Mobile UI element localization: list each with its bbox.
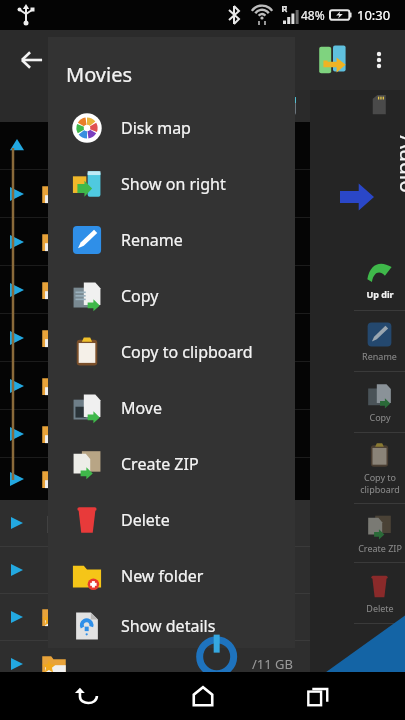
button[interactable]: Copy to other panel — [312, 39, 354, 81]
staticText: Disk map — [121, 117, 191, 139]
staticText: Rename — [121, 229, 183, 251]
button[interactable]: Back — [10, 38, 54, 82]
button[interactable]: /58 GB — [0, 594, 310, 640]
button[interactable]: /58 GB — [0, 500, 310, 546]
button[interactable]: /11 GB — [0, 641, 310, 687]
staticText: 48% — [301, 7, 325, 23]
staticText: Copy to clipboard — [360, 471, 400, 495]
button[interactable]: Copy — [48, 268, 295, 324]
button[interactable]: Back — [59, 672, 115, 720]
staticText: Xplore — [60, 674, 106, 694]
button[interactable] — [0, 218, 310, 265]
button[interactable]: Home — [175, 672, 231, 720]
staticText: Copy — [369, 411, 391, 423]
button[interactable] — [0, 458, 310, 500]
button[interactable] — [0, 266, 310, 313]
staticText: Copy — [121, 285, 159, 307]
button[interactable]: Show details — [48, 604, 295, 648]
button[interactable]: Copy to clipboard — [354, 433, 405, 503]
button[interactable]: Delete — [354, 563, 405, 623]
button[interactable]: Create ZIP — [354, 504, 405, 562]
staticText: Delete — [366, 602, 394, 614]
button[interactable]: Delete — [48, 492, 295, 548]
staticText: /11 GB — [252, 655, 294, 673]
staticText: Movies — [66, 61, 133, 88]
button[interactable]: Recents — [290, 672, 346, 720]
button[interactable]: /11 GB — [0, 547, 310, 593]
button[interactable] — [0, 410, 310, 457]
staticText: Up dir — [366, 288, 394, 300]
staticText: Delete — [121, 509, 170, 531]
button[interactable]: Up dir — [354, 248, 405, 310]
staticText: Show details — [121, 615, 216, 637]
button[interactable] — [0, 314, 310, 361]
button[interactable]: New folder — [48, 548, 295, 604]
button[interactable] — [0, 170, 310, 217]
button[interactable]: Rename — [354, 311, 405, 371]
button[interactable]: Copy to clipboard — [48, 324, 295, 380]
button[interactable] — [0, 122, 310, 169]
staticText: Rename — [362, 350, 397, 362]
staticText: Move — [121, 397, 163, 419]
button[interactable]: Disk map — [48, 100, 295, 156]
button[interactable]: More options — [359, 40, 399, 80]
button[interactable]: Rename — [48, 212, 295, 268]
button[interactable]: Move — [48, 380, 295, 436]
staticText: Audio — [392, 135, 405, 193]
button[interactable] — [0, 362, 310, 409]
button[interactable]: Create ZIP — [48, 436, 295, 492]
staticText: Copy to clipboard — [121, 341, 253, 363]
button[interactable]: Copy — [354, 372, 405, 432]
staticText: New folder — [121, 565, 204, 587]
button[interactable]: Show on right — [48, 156, 295, 212]
staticText: Create ZIP — [358, 542, 402, 554]
staticText: 10:30 — [357, 6, 391, 24]
staticText: Create ZIP — [121, 453, 199, 475]
staticText: Show on right — [121, 173, 226, 195]
